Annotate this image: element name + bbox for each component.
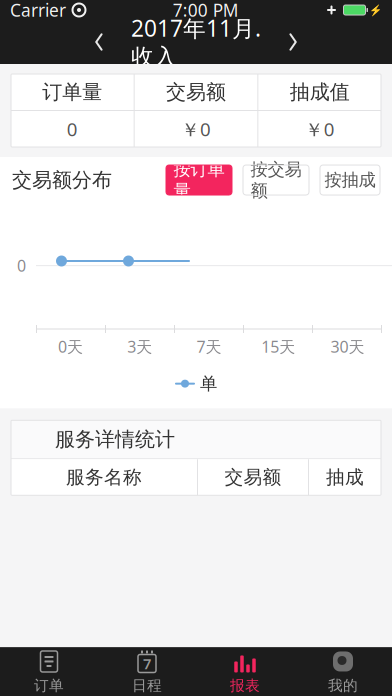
staticText: ⚡ bbox=[369, 4, 382, 16]
staticText: 30天 bbox=[330, 336, 364, 357]
button[interactable]: 7 bbox=[98, 648, 196, 696]
staticText: 服务详情统计 bbox=[55, 427, 175, 452]
staticText: 抽成值 bbox=[290, 80, 350, 104]
staticText: 抽成 bbox=[326, 466, 364, 489]
staticText: ￥0 bbox=[305, 117, 335, 141]
staticText: 我的 bbox=[328, 676, 358, 694]
staticText: ￥0 bbox=[181, 117, 211, 141]
staticText: 按订单量 bbox=[173, 159, 224, 201]
button[interactable]: 订单 bbox=[0, 648, 98, 696]
staticText: 15天 bbox=[261, 336, 295, 357]
staticText: 订单 bbox=[34, 676, 64, 694]
button[interactable]: 按交易额 bbox=[243, 165, 309, 195]
staticText: 交易额分布 bbox=[12, 168, 112, 192]
staticText: Carrier bbox=[10, 0, 66, 21]
button[interactable]: 报表 bbox=[196, 648, 294, 696]
staticText: 报表 bbox=[230, 676, 260, 694]
staticText: 7 bbox=[143, 654, 151, 673]
staticText: 服务名称 bbox=[66, 466, 142, 489]
button[interactable]: 下一月 bbox=[271, 22, 315, 62]
staticText: 0 bbox=[67, 117, 78, 141]
staticText: 按交易额 bbox=[250, 159, 301, 201]
staticText: 交易额 bbox=[224, 466, 281, 489]
staticText: 0天 bbox=[58, 336, 83, 357]
staticText: 订单量 bbox=[42, 80, 102, 104]
button[interactable]: 我的 bbox=[294, 648, 392, 696]
button[interactable]: 按抽成 bbox=[320, 165, 380, 195]
staticText: 3天 bbox=[127, 336, 152, 357]
button[interactable]: 按订单量 bbox=[166, 165, 232, 195]
staticText: 按抽成 bbox=[324, 169, 375, 191]
staticText: 2017年11月.收入 bbox=[131, 13, 261, 71]
staticText: 日程 bbox=[132, 676, 162, 694]
staticText: 交易额 bbox=[166, 80, 226, 104]
staticText: 7天 bbox=[196, 336, 221, 357]
staticText: 0 bbox=[17, 255, 26, 276]
staticText: 7:00 PM bbox=[173, 0, 239, 21]
button[interactable]: 上一月 bbox=[77, 22, 121, 62]
staticText: 单 bbox=[200, 373, 217, 394]
